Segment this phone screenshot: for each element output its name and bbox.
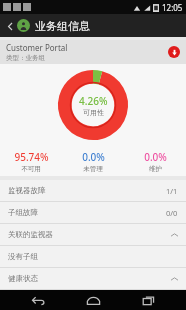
button[interactable]: 0.0% (62, 146, 124, 176)
button[interactable]: Back (21, 290, 55, 310)
staticText: 关联的监视器 (8, 230, 171, 239)
staticText: 子组故障 (8, 208, 166, 217)
staticText: 0/0 (166, 208, 178, 218)
staticText: 监视器故障 (8, 186, 166, 195)
staticText: 0.0% (82, 150, 105, 164)
staticText: 4.26% (79, 94, 108, 108)
button[interactable]: 健康状态 (0, 268, 186, 289)
button[interactable]: 子组故障 (0, 202, 186, 223)
staticText: 0.0% (144, 150, 167, 164)
button[interactable]: 没有子组 (0, 246, 186, 267)
button[interactable]: 监视器故障 (0, 180, 186, 201)
button[interactable]: 95.74% (0, 146, 62, 176)
staticText: 95.74% (14, 150, 49, 164)
button[interactable]: 0.0% (124, 146, 186, 176)
staticText: 可用性 (83, 108, 104, 117)
button[interactable]: Down (168, 46, 180, 58)
staticText: 健康状态 (8, 274, 171, 283)
button[interactable]: Recents (131, 290, 165, 310)
button[interactable]: Back (4, 20, 16, 32)
staticText: 业务组信息 (35, 19, 90, 33)
staticText: 维护 (149, 165, 162, 173)
staticText: 没有子组 (8, 252, 178, 261)
button[interactable]: Customer Portal (0, 40, 186, 64)
staticText: 不可用 (21, 165, 41, 173)
staticText: 1/1 (166, 186, 178, 196)
staticText: 未管理 (83, 165, 103, 173)
staticText: 12:05 (162, 2, 183, 13)
button[interactable]: 关联的监视器 (0, 224, 186, 245)
staticText: Customer Portal (6, 42, 68, 53)
button[interactable]: Home (76, 290, 110, 310)
staticText: 类型：业务组 (6, 54, 45, 62)
